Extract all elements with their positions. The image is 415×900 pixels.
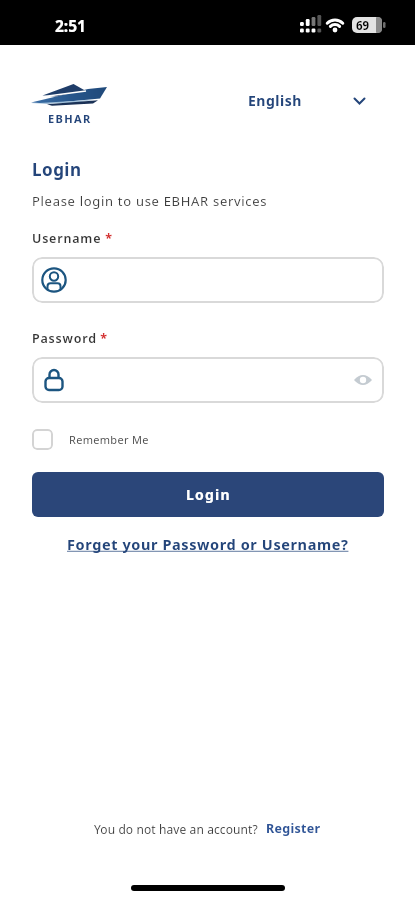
button[interactable] <box>32 257 384 303</box>
staticText: English <box>248 91 302 110</box>
staticText: Password <box>32 330 97 347</box>
staticText: 69 <box>356 18 370 34</box>
staticText: Username <box>32 230 102 247</box>
button[interactable]: Login <box>32 472 384 517</box>
button[interactable]: Remember Me <box>32 426 149 452</box>
staticText: Login <box>32 158 82 181</box>
button[interactable]: Forget your Password or Username? <box>67 534 349 554</box>
button[interactable] <box>32 357 384 403</box>
staticText: Please login to use EBHAR services <box>32 192 268 210</box>
staticText: * <box>102 230 113 247</box>
button[interactable]: Register <box>266 820 321 837</box>
button[interactable]: English <box>240 86 366 114</box>
staticText: EBHAR <box>48 111 92 126</box>
staticText: Login <box>186 485 231 504</box>
staticText: Remember Me <box>69 432 149 447</box>
staticText: 2:51 <box>55 15 86 36</box>
staticText: * <box>97 330 108 347</box>
staticText: You do not have an account? <box>94 821 258 837</box>
